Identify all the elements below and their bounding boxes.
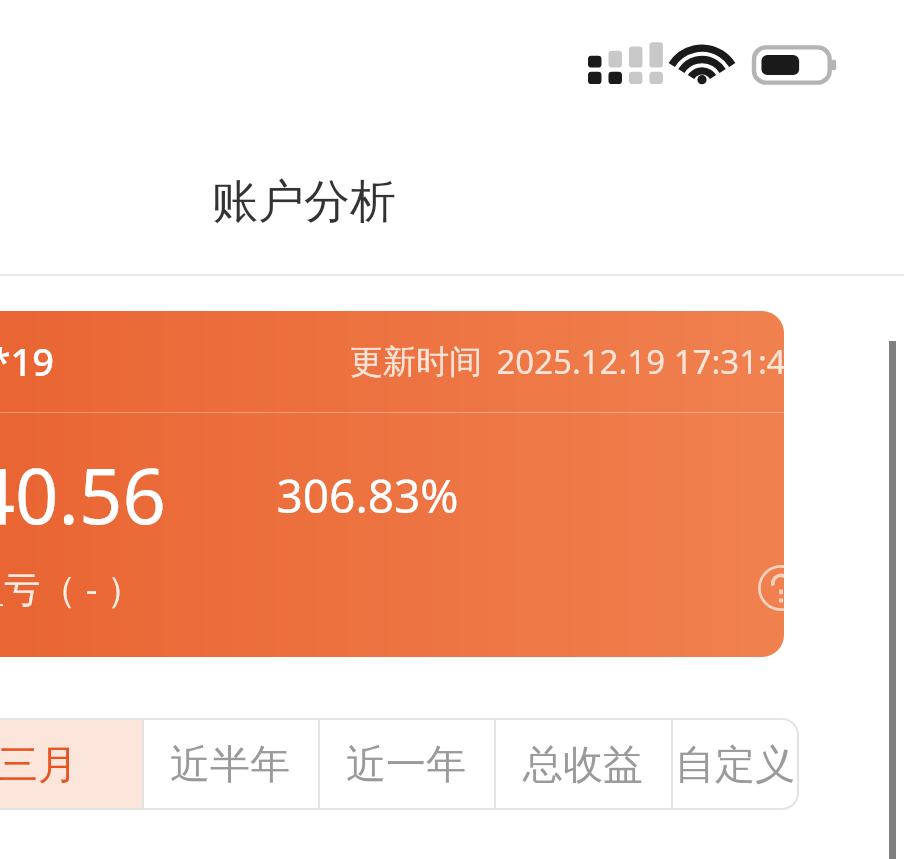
staticText: 账户分析: [212, 173, 396, 231]
button[interactable]: 近一年: [318, 719, 494, 809]
button[interactable]: ***19: [0, 311, 784, 657]
other: WiFi: [674, 44, 730, 86]
button[interactable]: 帮助: [753, 560, 784, 616]
button[interactable]: 近三月: [0, 719, 142, 809]
button[interactable]: 总收益: [494, 719, 671, 809]
other: 信号: [588, 44, 650, 86]
staticText: 总收益: [523, 739, 643, 789]
staticText: 306.83%: [276, 464, 459, 527]
staticText: 2025.12.19 17:31:46: [496, 339, 784, 384]
button[interactable]: 自定义: [671, 719, 798, 809]
staticText: 自定义: [675, 739, 795, 789]
staticText: 近半年: [170, 739, 290, 789]
other: 电量: [754, 43, 840, 87]
staticText: ***19: [0, 335, 54, 387]
staticText: 440.56: [0, 443, 166, 547]
staticText: 考盈亏（ - ）: [0, 564, 143, 613]
button[interactable]: 账户分析: [212, 173, 396, 231]
staticText: 近一年: [346, 739, 466, 789]
staticText: 更新时间: [350, 341, 482, 383]
staticText: 近三月: [0, 739, 78, 789]
button[interactable]: 近半年: [142, 719, 318, 809]
